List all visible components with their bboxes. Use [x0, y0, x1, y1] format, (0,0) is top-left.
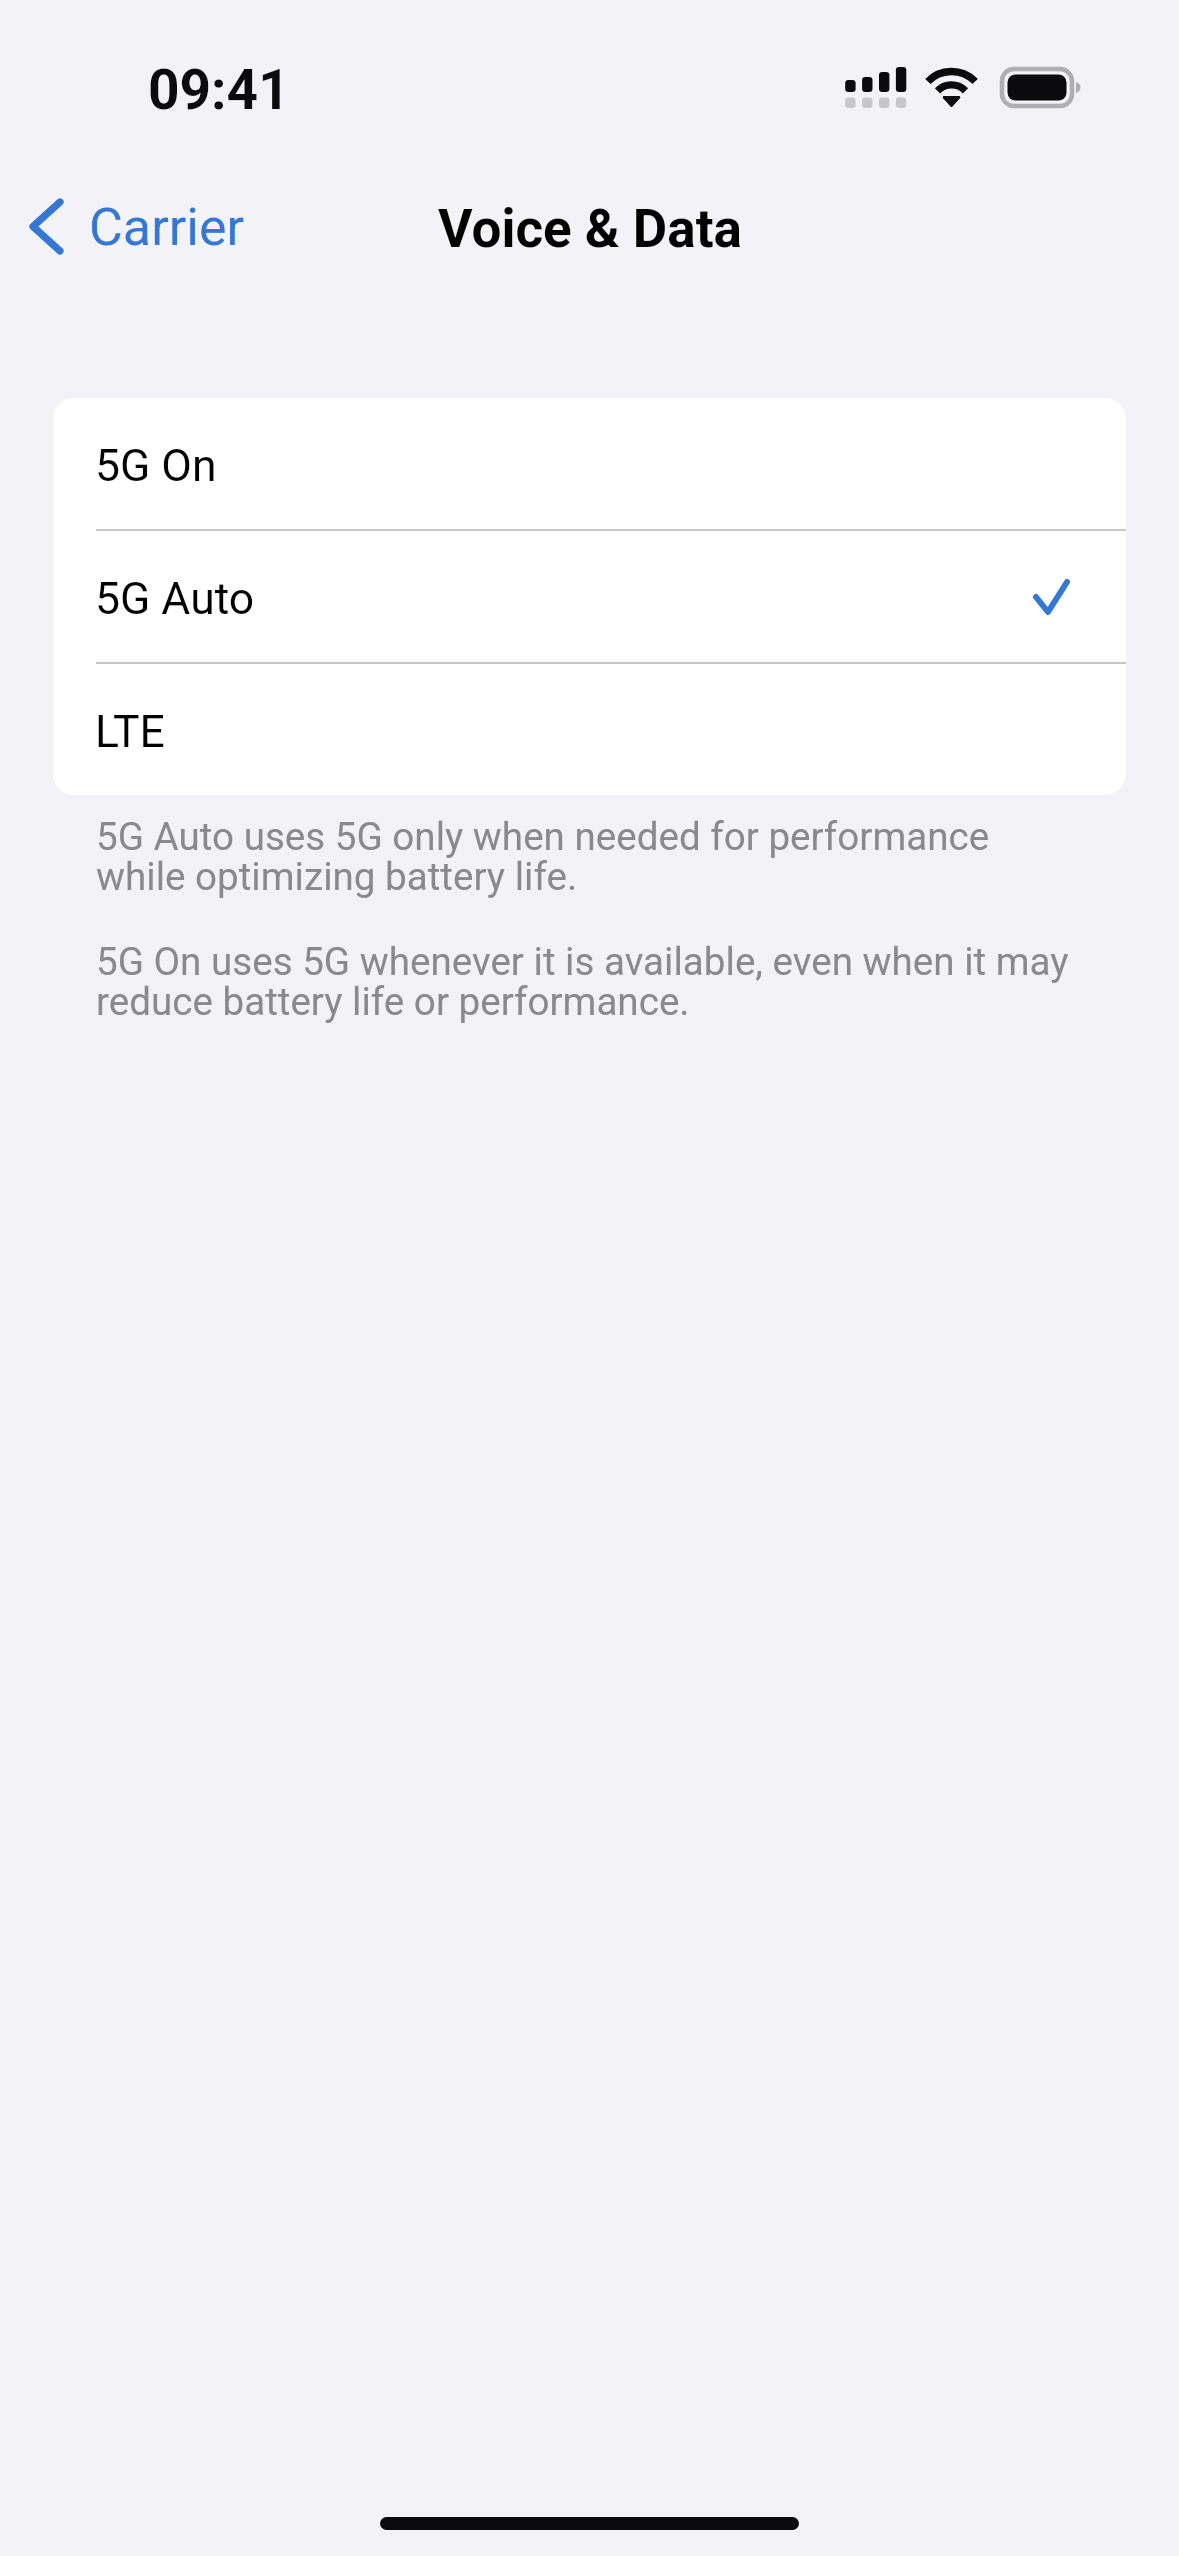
button[interactable]: LTE [53, 664, 1126, 795]
staticText: LTE [95, 706, 165, 758]
staticText: Voice & Data [438, 198, 742, 260]
staticText: 5G Auto [95, 573, 255, 625]
button[interactable]: 5G On [53, 398, 1126, 529]
button[interactable]: Back to Carrier [8, 168, 263, 284]
other: Selected [1033, 579, 1070, 615]
staticText: 5G On uses 5G whenever it is available, … [96, 939, 1069, 1025]
button[interactable]: 5G Auto [53, 531, 1126, 662]
staticText: Carrier [89, 197, 245, 258]
staticText: 5G On [95, 440, 217, 492]
staticText: 5G Auto uses 5G only when needed for per… [96, 814, 990, 900]
staticText: 09:41 [148, 58, 290, 122]
